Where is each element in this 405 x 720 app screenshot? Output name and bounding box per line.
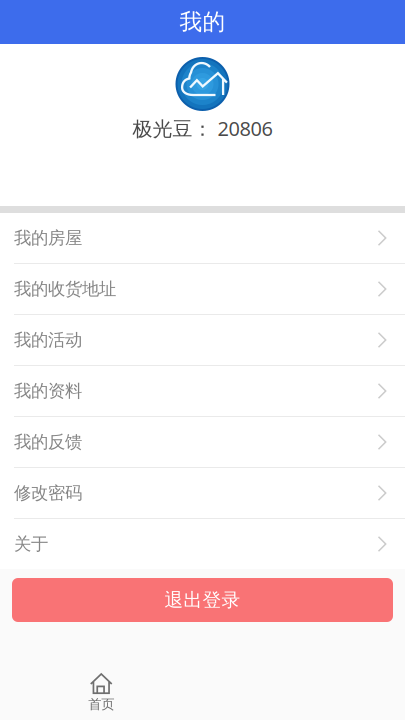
staticText: 首页 [88, 696, 114, 713]
staticText: 我的房屋 [14, 227, 82, 249]
staticText: 我的活动 [14, 329, 82, 351]
button[interactable]: 修改密码 [0, 468, 405, 518]
button[interactable]: 我的活动 [0, 315, 405, 365]
staticText: 我的 [179, 8, 225, 36]
button[interactable]: 首页 [0, 666, 202, 720]
button[interactable]: 我的房屋 [0, 213, 405, 263]
staticText: 退出登录 [164, 588, 240, 611]
button[interactable]: 我的反馈 [0, 417, 405, 467]
staticText: 我的收货地址 [14, 278, 116, 300]
button[interactable]: 退出登录 [12, 578, 393, 622]
staticText: 我的反馈 [14, 431, 82, 453]
staticText: 极光豆： 20806 [132, 115, 272, 142]
staticText: 关于 [14, 533, 48, 555]
staticText: 修改密码 [14, 482, 82, 504]
button[interactable]: 我的收货地址 [0, 264, 405, 314]
staticText: 我的资料 [14, 380, 82, 402]
button[interactable]: 关于 [0, 519, 405, 569]
button[interactable]: 我的资料 [0, 366, 405, 416]
